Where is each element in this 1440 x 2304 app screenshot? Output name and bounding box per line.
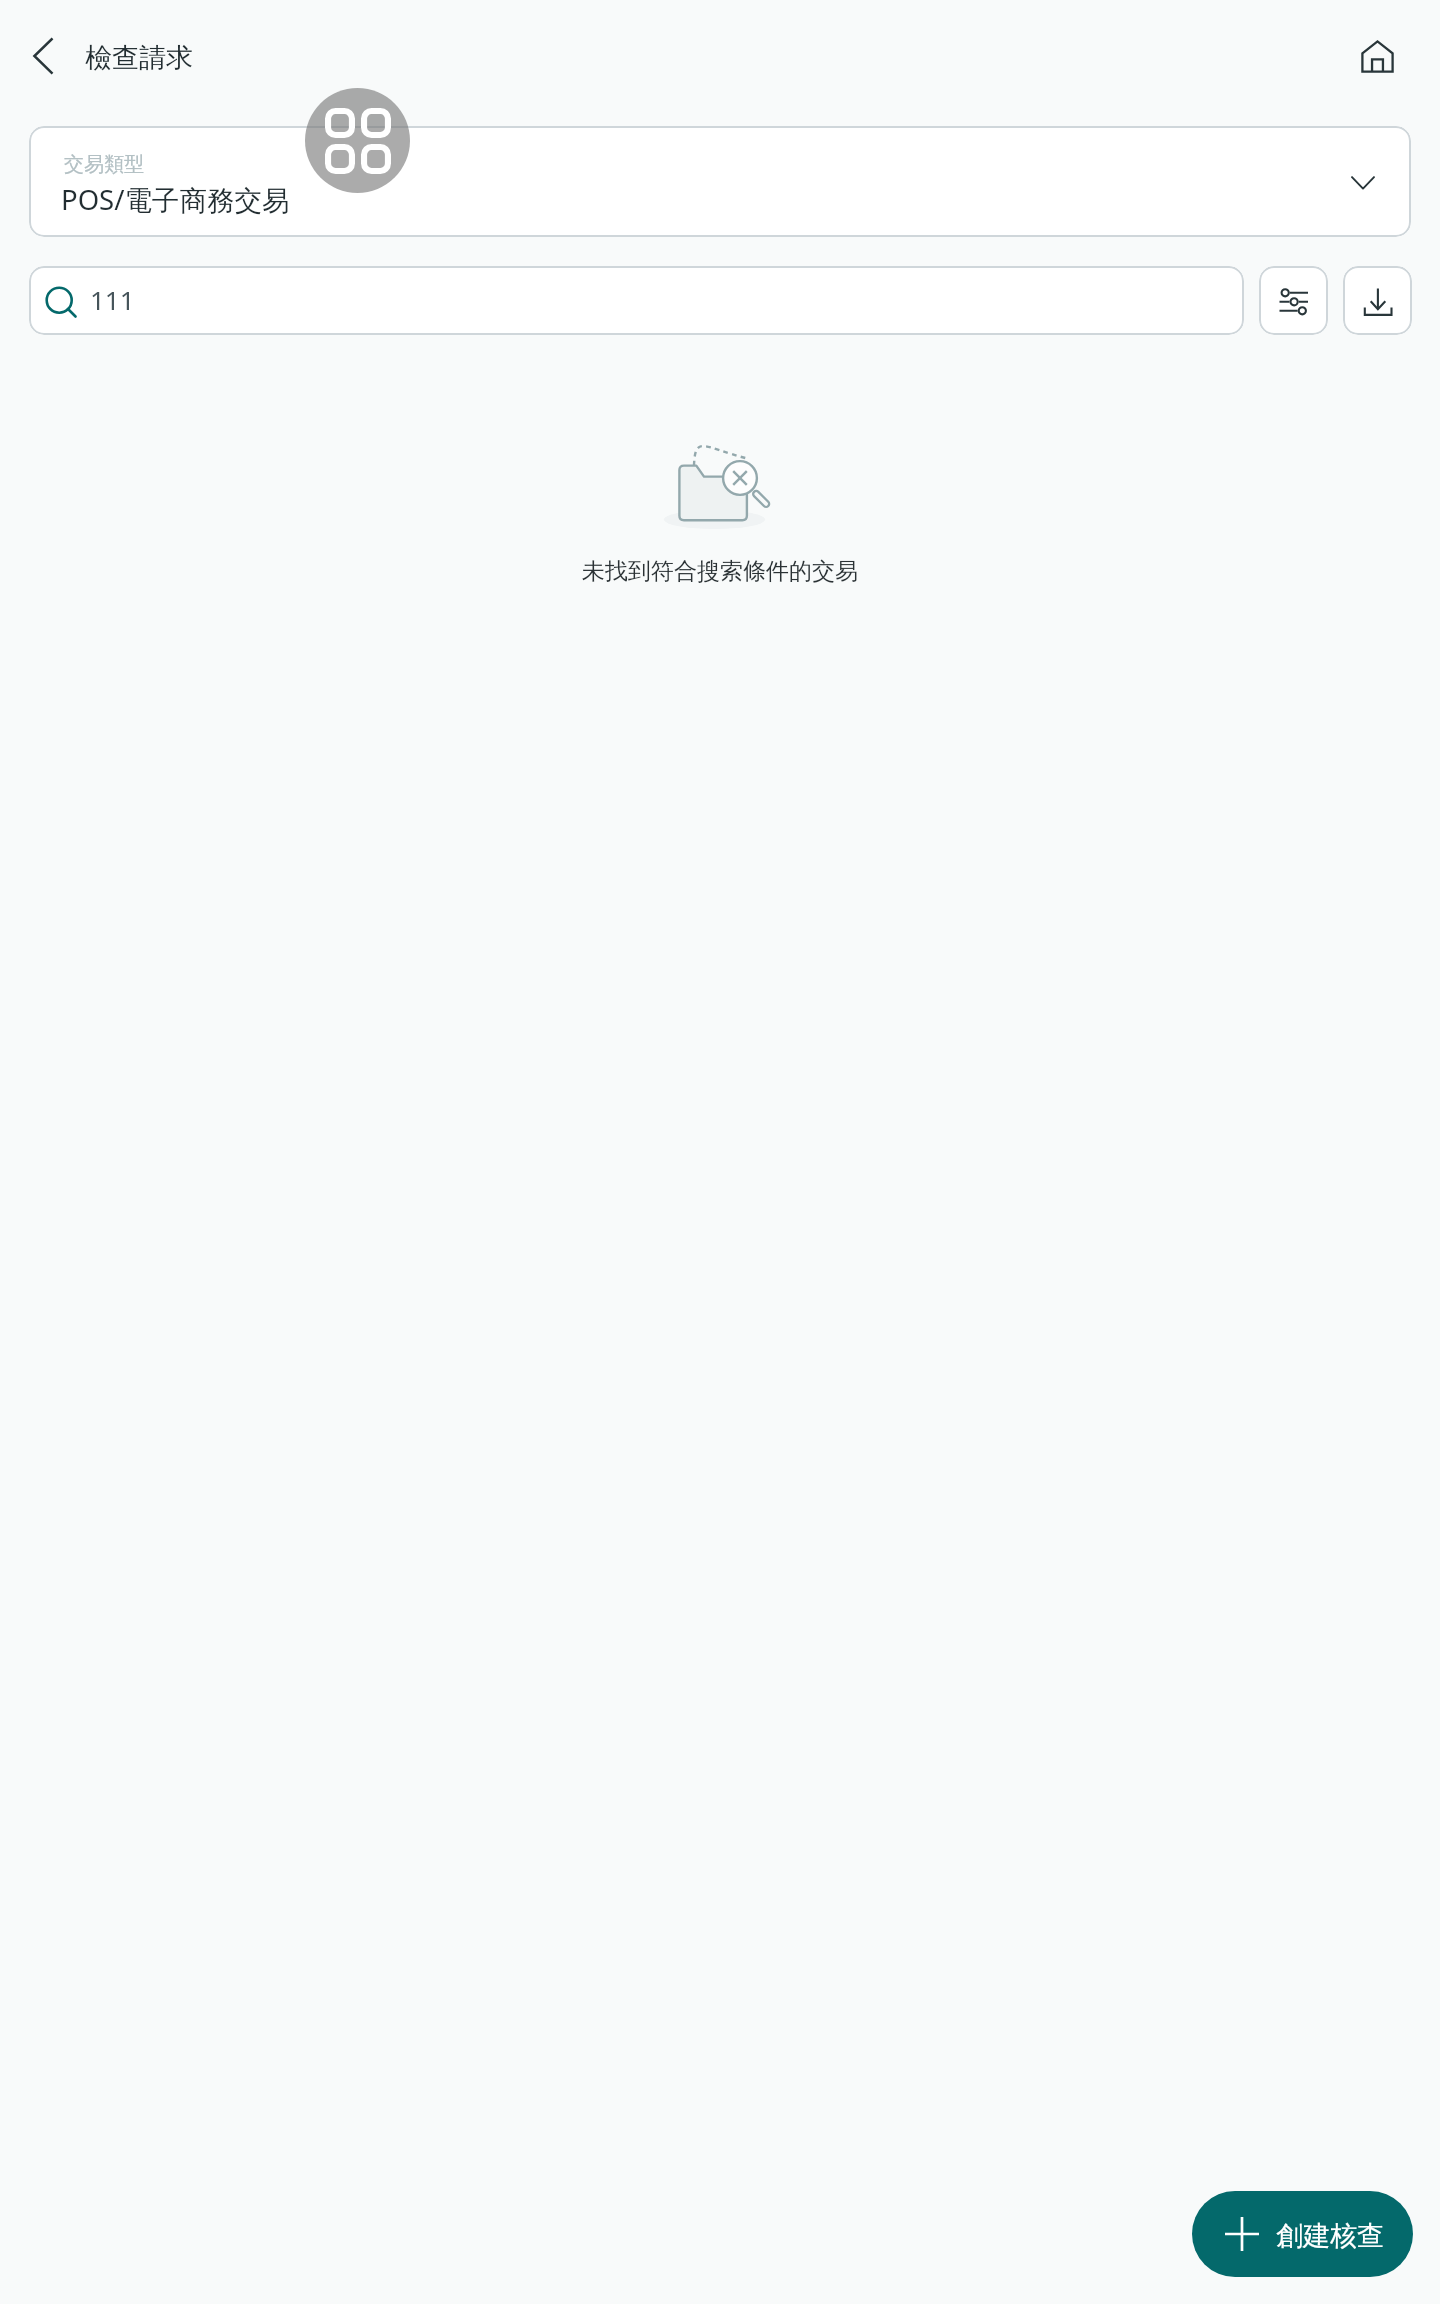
button[interactable]: Apps (305, 88, 410, 193)
button[interactable]: 111 (29, 266, 1244, 335)
staticText: 交易類型 (64, 152, 144, 177)
staticText: 創建核查 (1276, 2219, 1384, 2253)
button[interactable]: 交易類型 (29, 126, 1411, 237)
button[interactable]: Back (19, 32, 67, 80)
staticText: 111 (90, 282, 135, 317)
staticText: 未找到符合搜索條件的交易 (582, 557, 858, 586)
button[interactable]: Home (1353, 32, 1401, 80)
button[interactable]: Filter (1259, 266, 1328, 335)
staticText: POS/電子商務交易 (61, 181, 290, 219)
button[interactable]: Download (1343, 266, 1412, 335)
button[interactable]: 創建核查 (1192, 2191, 1413, 2277)
staticText: 檢查請求 (85, 41, 193, 75)
